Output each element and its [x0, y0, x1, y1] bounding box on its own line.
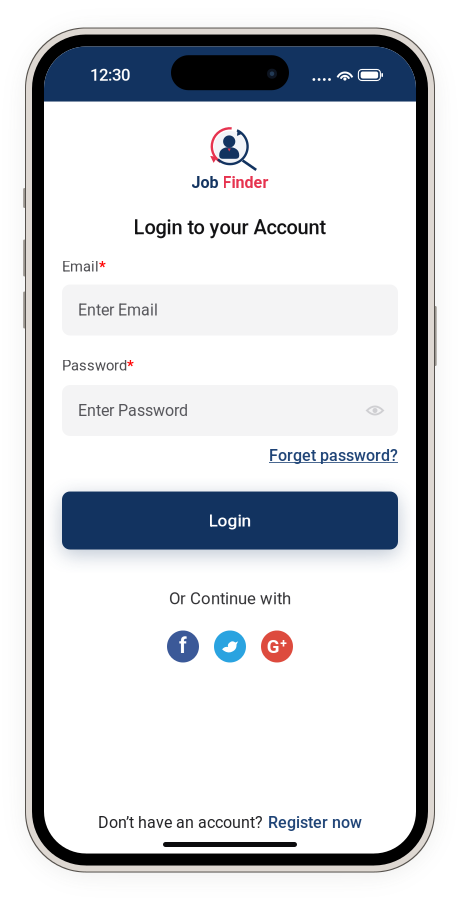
staticText: Don’t have an account? — [98, 813, 263, 832]
button[interactable]: Continue with Facebook — [167, 630, 199, 662]
staticText: Or Continue with — [169, 589, 291, 608]
staticText: Email — [62, 258, 99, 275]
button[interactable]: Continue with Twitter — [214, 630, 246, 662]
staticText: Job — [191, 173, 218, 192]
staticText: Password — [62, 357, 127, 374]
staticText: f — [179, 633, 187, 658]
button[interactable]: Forget password? — [269, 446, 398, 465]
staticText: G — [267, 636, 280, 657]
button[interactable]: Enter Email — [62, 284, 398, 335]
staticText: * — [127, 357, 134, 375]
staticText: Login to your Account — [133, 216, 326, 239]
button[interactable]: Don’t have an account? — [98, 813, 362, 832]
staticText: 12:30 — [90, 65, 130, 85]
staticText: Login — [208, 510, 251, 531]
staticText: Forget password? — [269, 446, 398, 465]
staticText: + — [280, 637, 287, 651]
button[interactable]: Enter Password — [62, 385, 398, 436]
staticText: Register now — [268, 813, 362, 832]
staticText: Enter Password — [78, 401, 188, 420]
staticText: * — [99, 258, 106, 276]
button[interactable]: Continue with Google — [261, 630, 293, 662]
button[interactable]: Login — [62, 491, 398, 549]
staticText: Finder — [222, 173, 268, 192]
staticText: Enter Email — [78, 301, 158, 319]
